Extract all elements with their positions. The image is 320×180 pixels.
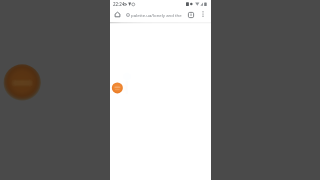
button[interactable]: Switch tabs xyxy=(186,10,195,19)
button[interactable]: palette.ua/lonely and the xyxy=(125,11,199,19)
staticText: palette.ua/lonely and the xyxy=(131,12,182,18)
button[interactable]: More options xyxy=(199,10,206,17)
button[interactable]: Home xyxy=(113,10,122,19)
staticText: 22:24 xyxy=(113,1,125,7)
